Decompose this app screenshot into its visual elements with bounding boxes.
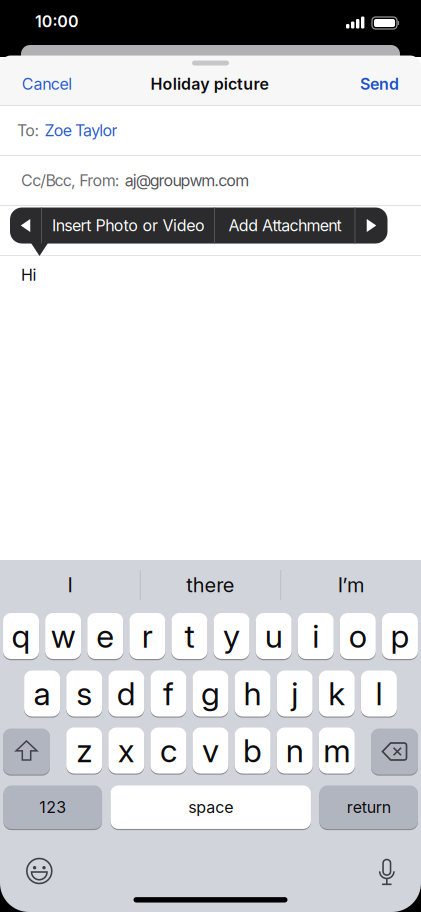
button[interactable]: 123 — [3, 785, 102, 829]
button[interactable]: space — [110, 785, 311, 829]
staticText: I — [67, 573, 72, 597]
staticText: Zoe Taylor — [45, 121, 117, 140]
staticText: s — [76, 675, 92, 712]
staticText: u — [265, 617, 283, 655]
staticText: t — [184, 617, 194, 655]
staticText: e — [96, 617, 114, 655]
button[interactable]: c — [150, 727, 186, 773]
staticText: Cc/Bcc, From: — [21, 171, 120, 190]
button[interactable]: Send — [349, 67, 409, 101]
button[interactable] — [355, 207, 386, 243]
button[interactable]: I’m — [282, 562, 420, 608]
button[interactable] — [371, 728, 418, 774]
staticText: Cancel — [22, 75, 72, 93]
button[interactable]: Cc/Bcc, From: — [21, 156, 421, 205]
button[interactable]: return — [319, 785, 418, 829]
button[interactable]: l — [361, 670, 397, 716]
staticText: aj@groupwm.com — [125, 171, 249, 190]
button[interactable]: Insert Photo or Video — [43, 207, 214, 243]
button[interactable]: g — [192, 670, 228, 716]
button[interactable]: h — [235, 670, 271, 716]
button[interactable] — [27, 858, 52, 883]
button[interactable]: b — [235, 727, 271, 773]
button[interactable]: n — [277, 727, 313, 773]
staticText: o — [349, 617, 367, 655]
button[interactable]: x — [108, 727, 144, 773]
staticText: m — [323, 732, 350, 769]
button[interactable]: p — [382, 613, 418, 659]
staticText: x — [118, 732, 135, 769]
staticText: d — [117, 675, 136, 712]
button[interactable]: v — [192, 727, 228, 773]
button[interactable]: Add Attachment — [215, 207, 354, 243]
staticText: n — [286, 732, 304, 769]
button[interactable]: i — [298, 613, 334, 659]
button[interactable] — [3, 728, 50, 774]
button[interactable]: k — [319, 670, 355, 716]
staticText: b — [243, 732, 262, 769]
button[interactable]: s — [66, 670, 102, 716]
staticText: c — [160, 732, 177, 769]
button[interactable]: Cancel — [12, 67, 82, 101]
staticText: Send — [360, 75, 399, 93]
staticText: j — [291, 675, 298, 712]
button[interactable]: f — [150, 670, 186, 716]
staticText: i — [312, 617, 319, 655]
button[interactable]: there — [141, 562, 279, 608]
staticText: r — [142, 617, 153, 655]
button[interactable]: u — [256, 613, 292, 659]
staticText: return — [347, 798, 391, 817]
staticText: 123 — [39, 798, 66, 817]
staticText: there — [186, 573, 235, 597]
staticText: k — [328, 675, 345, 712]
button[interactable]: e — [87, 613, 123, 659]
staticText: Holiday picture — [150, 75, 268, 93]
button[interactable] — [378, 859, 395, 885]
staticText: To: — [17, 121, 40, 140]
button[interactable] — [9, 207, 41, 243]
staticText: Insert Photo or Video — [52, 216, 205, 235]
button[interactable]: m — [319, 727, 355, 773]
staticText: I’m — [338, 573, 364, 597]
staticText: z — [76, 732, 92, 769]
staticText: y — [223, 617, 240, 655]
staticText: l — [375, 675, 382, 712]
button[interactable]: z — [66, 727, 102, 773]
staticText: p — [390, 617, 409, 655]
button[interactable]: y — [214, 613, 250, 659]
button[interactable]: r — [129, 613, 165, 659]
staticText: q — [12, 617, 31, 655]
staticText: space — [188, 798, 233, 817]
staticText: 10:00 — [35, 12, 79, 31]
button[interactable]: j — [277, 670, 313, 716]
button[interactable]: I — [1, 562, 139, 608]
button[interactable]: t — [171, 613, 207, 659]
button[interactable]: d — [108, 670, 144, 716]
button[interactable]: w — [45, 613, 81, 659]
staticText: Hi — [21, 266, 37, 284]
staticText: h — [244, 675, 262, 712]
staticText: f — [163, 675, 174, 712]
staticText: w — [51, 617, 76, 655]
staticText: Add Attachment — [228, 216, 342, 235]
staticText: g — [201, 675, 220, 712]
button[interactable]: a — [24, 670, 60, 716]
button[interactable]: To: — [17, 106, 421, 155]
staticText: v — [202, 732, 219, 769]
staticText: a — [34, 675, 51, 712]
button[interactable]: q — [3, 613, 39, 659]
button[interactable]: o — [340, 613, 376, 659]
